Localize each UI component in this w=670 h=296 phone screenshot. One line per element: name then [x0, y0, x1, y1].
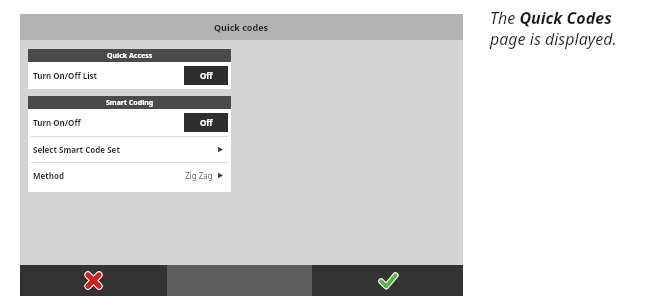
staticText: The Quick Codes page is displayed. — [490, 7, 665, 50]
staticText: Select Smart Code Set — [33, 144, 217, 155]
staticText: Quick codes — [214, 21, 269, 33]
staticText: Turn On/Off — [33, 117, 184, 128]
button[interactable]: Turn On/Off List — [28, 62, 231, 89]
button[interactable]: Cancel — [20, 265, 167, 296]
button[interactable]: Confirm — [312, 265, 463, 296]
button[interactable]: Turn On/Off — [28, 109, 231, 136]
button[interactable]: Method — [28, 163, 231, 188]
staticText: Off — [200, 70, 213, 81]
staticText: Turn On/Off List — [33, 70, 184, 81]
button[interactable]: Select Smart Code Set — [28, 137, 231, 162]
staticText: Off — [200, 117, 213, 128]
button[interactable]: Off — [184, 113, 228, 132]
button[interactable]: Off — [184, 66, 228, 85]
staticText: Smart Coding — [106, 98, 154, 108]
staticText: Zig Zag — [185, 170, 213, 181]
staticText: Method — [33, 170, 185, 181]
staticText: Quick Access — [107, 51, 153, 61]
